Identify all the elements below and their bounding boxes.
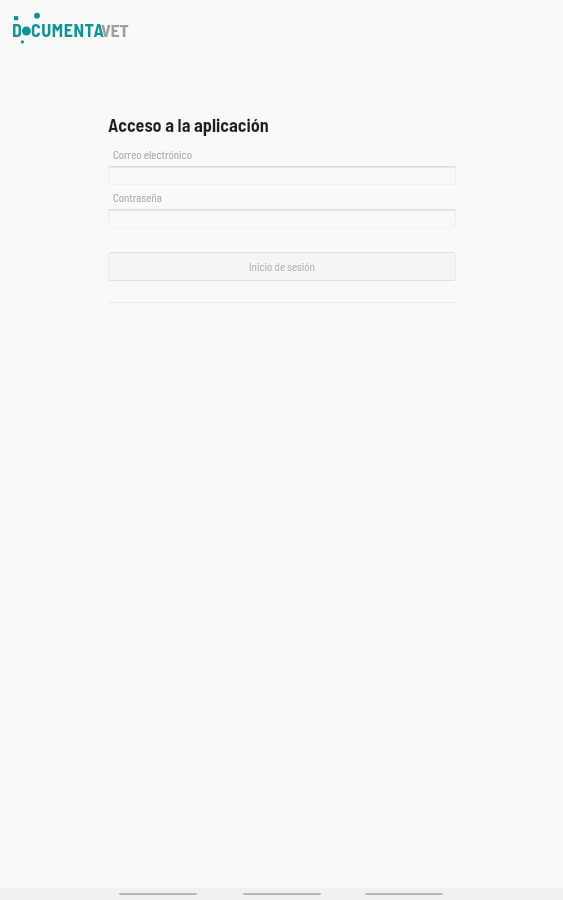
button[interactable] — [108, 166, 456, 185]
staticText: VET — [101, 19, 129, 40]
staticText: Inicio de sesión — [249, 260, 315, 273]
button[interactable]: System navigation — [243, 887, 321, 900]
staticText: CUMENTA — [31, 19, 105, 41]
staticText: Correo electrónico — [113, 148, 192, 161]
staticText: D — [12, 19, 22, 41]
button[interactable]: System navigation — [365, 887, 443, 900]
button[interactable]: System navigation — [119, 887, 197, 900]
staticText: Contraseña — [113, 191, 162, 204]
staticText: Acceso a la aplicación — [108, 114, 269, 136]
other: DocumentaVet — [0, 0, 150, 52]
button[interactable] — [108, 209, 456, 228]
button[interactable]: Inicio de sesión — [108, 252, 456, 281]
